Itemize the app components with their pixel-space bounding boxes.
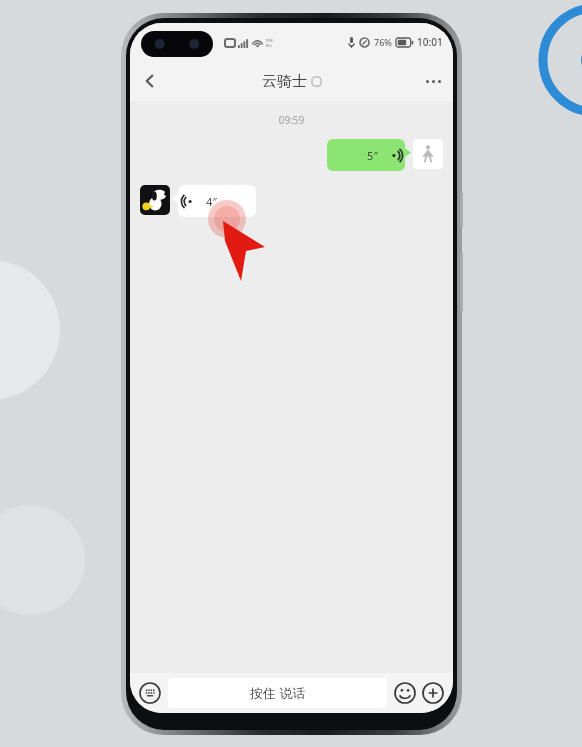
button[interactable]: Back bbox=[130, 61, 170, 101]
button[interactable]: 按住 说话 bbox=[168, 678, 387, 708]
button[interactable]: 4″ bbox=[178, 185, 256, 217]
staticText: 10:01 bbox=[417, 35, 443, 49]
button[interactable]: Keyboard bbox=[136, 679, 164, 707]
staticText: 998 bbox=[266, 38, 273, 43]
button[interactable]: Emoji bbox=[391, 679, 419, 707]
staticText: 5″ bbox=[367, 148, 378, 163]
staticText: 云骑士 bbox=[262, 72, 307, 91]
staticText: 09:59 bbox=[130, 113, 453, 127]
button[interactable]: My avatar bbox=[413, 139, 443, 169]
button[interactable]: Contact avatar bbox=[140, 185, 170, 215]
staticText: B/s bbox=[266, 43, 273, 48]
button[interactable]: More options bbox=[413, 61, 453, 101]
button[interactable]: More bbox=[419, 679, 447, 707]
staticText: 4″ bbox=[206, 194, 217, 209]
button[interactable]: 5″ bbox=[327, 139, 405, 171]
staticText: 按住 说话 bbox=[250, 684, 306, 702]
staticText: 76% bbox=[374, 36, 392, 48]
